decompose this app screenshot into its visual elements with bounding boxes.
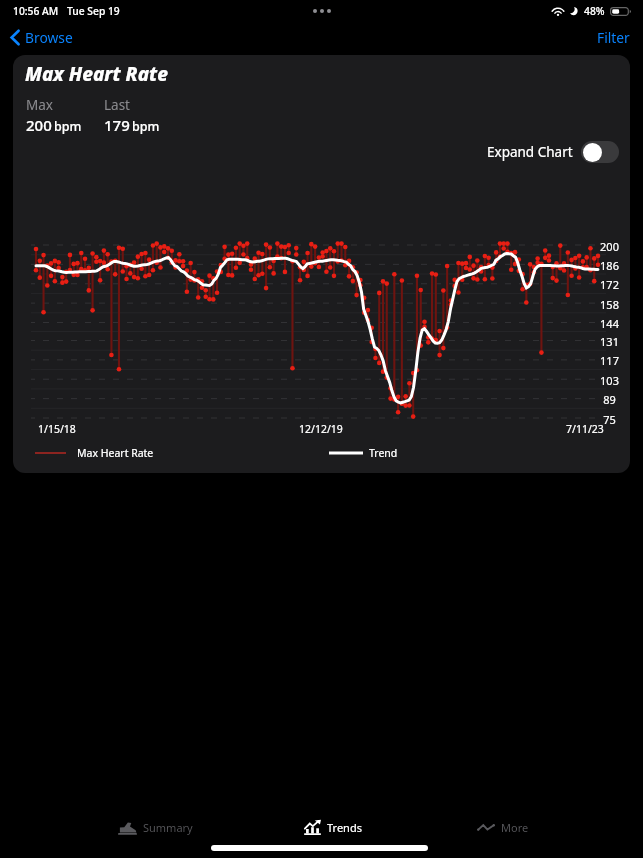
staticText: Filter bbox=[597, 28, 630, 47]
button[interactable]: More bbox=[469, 816, 537, 839]
other: Summary bbox=[118, 821, 137, 835]
other: Trends bbox=[304, 820, 321, 835]
staticText: Trend bbox=[369, 446, 398, 460]
staticText: 7/11/23 bbox=[566, 422, 604, 436]
staticText: 89 bbox=[603, 392, 616, 407]
staticText: Tue Sep 19 bbox=[67, 4, 120, 18]
staticText: 12/12/19 bbox=[299, 422, 343, 436]
staticText: 103 bbox=[600, 373, 619, 388]
staticText: 75 bbox=[603, 412, 616, 427]
staticText: Browse bbox=[25, 28, 73, 47]
staticText: Max bbox=[26, 96, 53, 114]
staticText: 1/15/18 bbox=[38, 422, 76, 436]
button[interactable]: Trends bbox=[296, 816, 370, 839]
staticText: Trends bbox=[327, 820, 362, 835]
staticText: 172 bbox=[600, 277, 619, 292]
staticText: 10:56 AM bbox=[13, 4, 59, 18]
staticText: 117 bbox=[600, 353, 619, 368]
button[interactable]: Back bbox=[0, 23, 85, 52]
button[interactable]: Expand Chart bbox=[487, 138, 630, 166]
staticText: 131 bbox=[600, 334, 619, 349]
staticText: bpm bbox=[54, 118, 82, 135]
staticText: 186 bbox=[600, 258, 619, 273]
other: Back bbox=[10, 29, 20, 46]
staticText: Last bbox=[104, 96, 130, 114]
staticText: bpm bbox=[132, 118, 160, 135]
staticText: Max Heart Rate bbox=[77, 446, 154, 460]
staticText: 144 bbox=[600, 316, 619, 331]
staticText: More bbox=[501, 820, 529, 835]
staticText: 48% bbox=[584, 4, 605, 18]
staticText: 179 bbox=[104, 115, 130, 135]
staticText: Summary bbox=[143, 820, 193, 835]
button[interactable]: Filter bbox=[584, 23, 643, 52]
staticText: Expand Chart bbox=[487, 143, 573, 161]
staticText: 158 bbox=[600, 297, 619, 312]
button[interactable]: Summary bbox=[110, 816, 201, 839]
staticText: 200 bbox=[26, 115, 52, 135]
staticText: Max Heart Rate bbox=[25, 61, 169, 87]
other: More bbox=[477, 824, 495, 831]
staticText: 200 bbox=[600, 239, 619, 254]
